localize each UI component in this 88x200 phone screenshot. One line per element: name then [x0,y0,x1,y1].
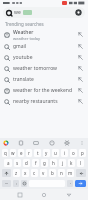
button[interactable]: n [58,169,65,177]
staticText: Trending searches [5,21,44,27]
staticText: l [80,160,82,166]
button[interactable]: More options [78,139,85,146]
button[interactable]: Clipboard [17,139,24,146]
button[interactable]: Backspace [76,169,86,177]
staticText: p [81,150,84,156]
staticText: y [45,150,48,156]
button[interactable]: weather for the weekend [0,85,88,96]
button[interactable]: Settings [63,139,70,146]
button[interactable]: Recents [15,190,25,200]
button[interactable]: GIF [32,139,39,146]
button[interactable]: u [52,149,59,157]
staticText: w [11,150,15,156]
button[interactable]: Insert suggestion [77,87,84,94]
button[interactable]: o [70,149,77,157]
button[interactable]: gmail [0,41,88,52]
button[interactable]: youtube [0,52,88,63]
staticText: weather for the weekend [13,87,72,94]
button[interactable]: i [61,149,68,157]
staticText: k [70,160,73,166]
button[interactable]: nearby restaurants [0,96,88,107]
staticText: i [64,150,66,156]
button[interactable]: t [34,149,41,157]
staticText: z [15,170,18,176]
staticText: g [43,160,46,166]
button[interactable]: Insert suggestion [77,54,84,61]
button[interactable]: Insert suggestion [77,76,84,83]
button[interactable]: d [23,159,30,167]
button[interactable]: p [79,149,86,157]
staticText: b [51,170,54,176]
staticText: f [35,160,37,166]
staticText: weather today [13,36,41,41]
staticText: we [14,9,21,16]
button[interactable]: k [68,159,75,167]
staticText: translate [13,76,34,83]
button[interactable]: Emoji keyboard [21,180,27,187]
button[interactable]: w [10,149,16,157]
button[interactable]: y [43,149,50,157]
staticText: s [16,160,19,166]
button[interactable]: m [67,169,74,177]
staticText: u [54,150,57,156]
staticText: Weather [13,29,34,36]
button[interactable]: x [22,169,29,177]
button[interactable]: Insert suggestion [77,98,84,105]
button[interactable]: j [59,159,66,167]
button[interactable]: Insert suggestion [77,65,84,72]
button[interactable]: q [2,149,8,157]
button[interactable]: Period [67,180,73,187]
button[interactable]: c [31,169,38,177]
staticText: c [33,170,36,176]
button[interactable]: Shift [2,169,11,177]
button[interactable]: Voice search [75,9,82,16]
button[interactable]: r [26,149,32,157]
button[interactable]: Comma [13,180,19,187]
button[interactable]: z [13,169,20,177]
button[interactable]: f [32,159,39,167]
staticText: o [72,150,75,156]
button[interactable]: Google [3,140,9,146]
staticText: d [25,160,28,166]
button[interactable]: g [41,159,48,167]
button[interactable]: Home [39,190,49,200]
button[interactable]: a [4,159,12,167]
button[interactable]: Insert suggestion [77,31,84,38]
button[interactable]: weather tomorrow [0,63,88,74]
other: Search icon [6,10,12,16]
button[interactable]: translate [0,74,88,85]
staticText: gmail [13,43,27,50]
button[interactable]: v [40,169,47,177]
button[interactable]: Emoji [48,139,55,146]
button[interactable]: e [18,149,24,157]
button[interactable]: Insert suggestion [77,43,84,50]
staticText: weather tomorrow [13,65,58,72]
staticText: m [68,170,73,176]
button[interactable]: b [49,169,56,177]
staticText: n [60,170,63,176]
button[interactable]: Back [64,190,74,200]
staticText: h [52,160,55,166]
staticText: j [62,160,64,166]
button[interactable]: h [50,159,57,167]
button[interactable]: Weather [0,28,88,41]
button[interactable]: Search [75,180,86,187]
staticText: a [7,160,10,166]
staticText: x [24,170,27,176]
staticText: t [37,150,39,156]
button[interactable]: l [77,159,84,167]
button[interactable]: Symbols [2,180,11,187]
staticText: v [42,170,45,176]
staticText: e [20,150,23,156]
staticText: nearby restaurants [13,98,58,105]
staticText: youtube [13,54,33,61]
button[interactable]: Search icon [3,7,85,18]
staticText: r [28,150,30,156]
button[interactable]: s [14,159,21,167]
staticText: q [4,150,7,156]
